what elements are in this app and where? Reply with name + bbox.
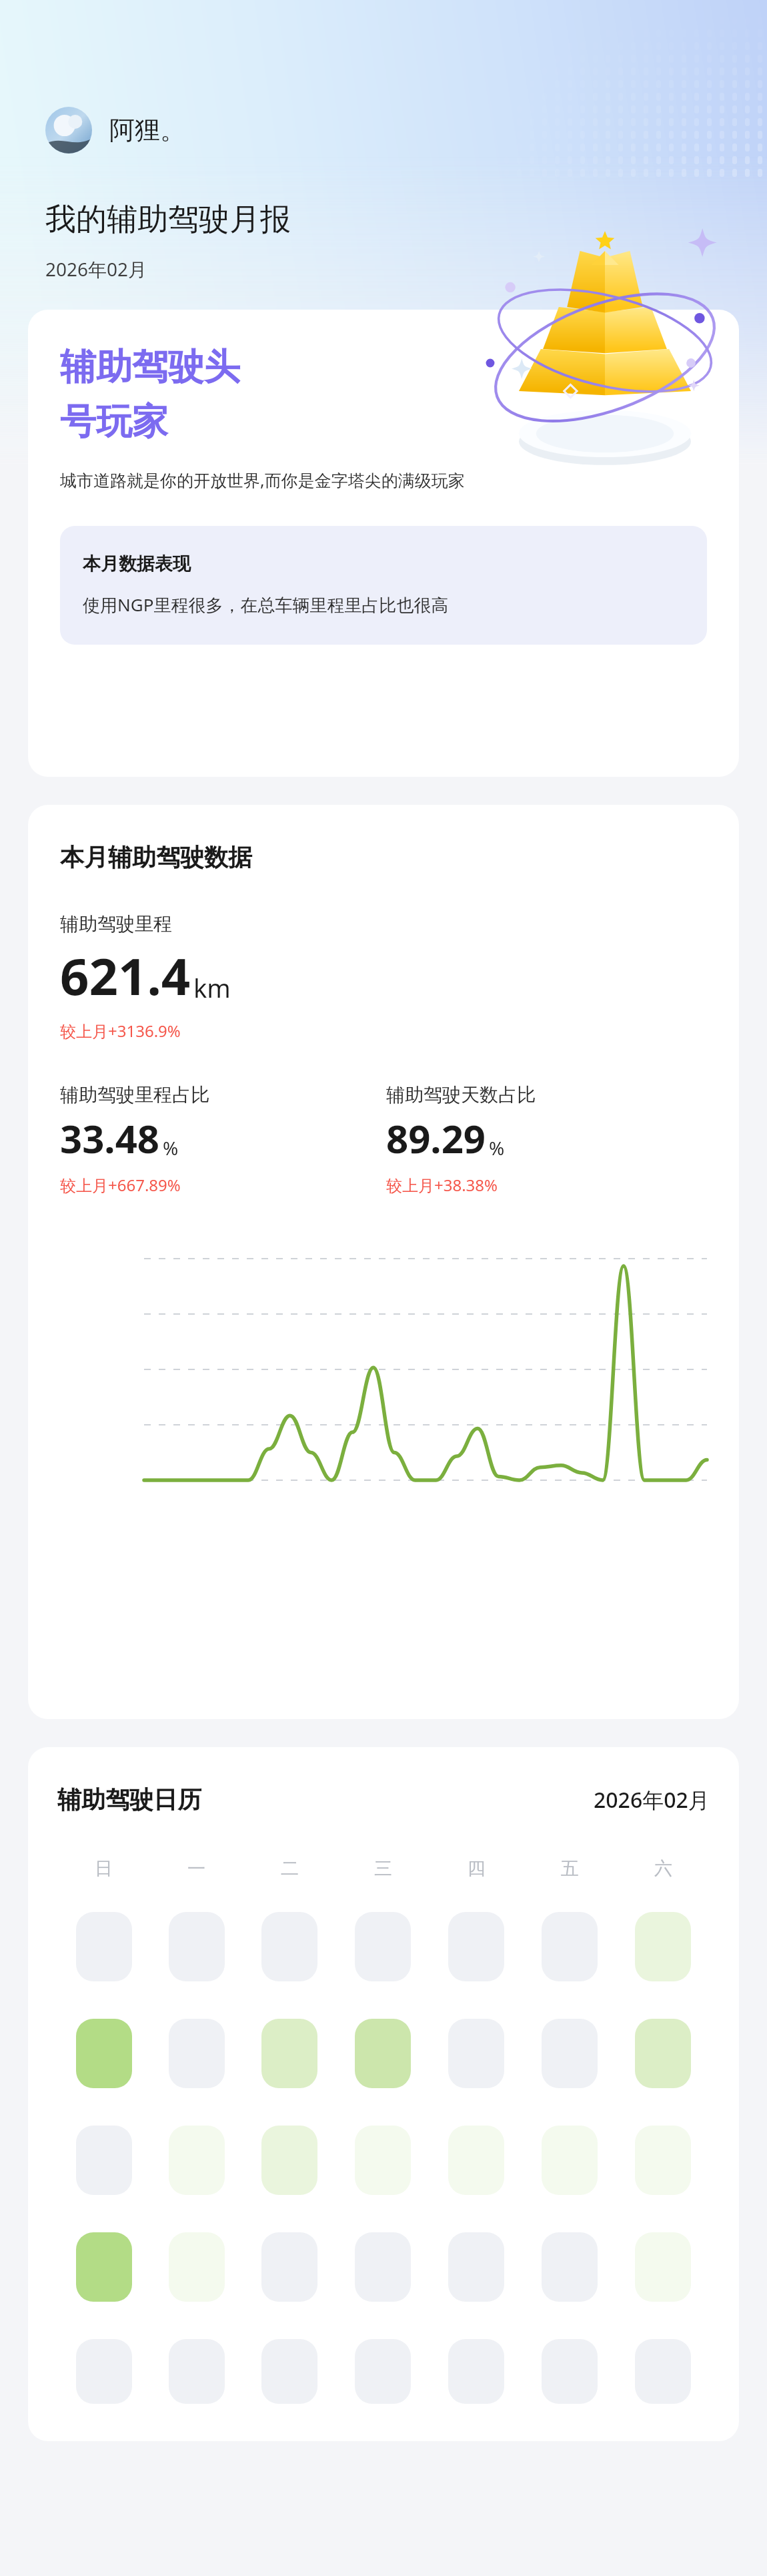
button[interactable] — [261, 1912, 317, 1981]
button[interactable] — [76, 2126, 132, 2195]
staticText: % — [163, 1135, 179, 1161]
staticText: 本月数据表现 — [83, 553, 191, 575]
button[interactable] — [169, 2019, 225, 2088]
button[interactable] — [261, 2339, 317, 2404]
staticText: 城市道路就是你的开放世界,而你是金字塔尖的满级玩家 — [60, 468, 465, 491]
staticText: 辅助驾驶天数占比 — [386, 1083, 536, 1106]
button[interactable] — [355, 1912, 411, 1981]
button[interactable] — [76, 2019, 132, 2088]
button[interactable] — [542, 2126, 598, 2195]
staticText: 阿狸。 — [109, 114, 185, 146]
staticText: 三 — [374, 1857, 392, 1880]
staticText: 我的辅助驾驶月报 — [45, 200, 291, 239]
button[interactable] — [76, 2339, 132, 2404]
staticText: 较上月+38.38% — [386, 1174, 498, 1196]
button[interactable] — [169, 2339, 225, 2404]
button[interactable]: 辅助驾驶天数占比 — [386, 1083, 712, 1196]
button[interactable] — [448, 2019, 504, 2088]
button[interactable]: 本月辅助驾驶数据 — [28, 805, 739, 1719]
staticText: 辅助驾驶里程 — [60, 912, 172, 936]
button[interactable] — [76, 2232, 132, 2302]
staticText: 日 — [95, 1857, 113, 1880]
staticText: 较上月+3136.9% — [60, 1020, 181, 1042]
staticText: 号玩家 — [60, 399, 168, 444]
button[interactable] — [635, 2339, 691, 2404]
staticText: 六 — [654, 1857, 672, 1880]
button[interactable] — [542, 2019, 598, 2088]
button[interactable] — [635, 2232, 691, 2302]
staticText: 89.29 — [386, 1112, 486, 1165]
button[interactable] — [635, 1912, 691, 1981]
staticText: 较上月+667.89% — [60, 1174, 181, 1196]
button[interactable] — [169, 2232, 225, 2302]
button[interactable] — [355, 2232, 411, 2302]
button[interactable]: 辅助驾驶里程占比 — [60, 1083, 386, 1196]
button[interactable] — [635, 2126, 691, 2195]
staticText: 辅助驾驶头 — [60, 344, 240, 390]
button[interactable] — [448, 2126, 504, 2195]
staticText: 2026年02月 — [594, 1785, 710, 1815]
button[interactable] — [261, 2232, 317, 2302]
button[interactable] — [448, 2232, 504, 2302]
button[interactable] — [448, 1912, 504, 1981]
staticText: 621.4 — [60, 941, 191, 1010]
staticText: 四 — [468, 1857, 486, 1880]
button[interactable]: 本月数据表现 — [60, 526, 707, 645]
staticText: 五 — [561, 1857, 579, 1880]
button[interactable]: 阿狸。 — [45, 107, 185, 153]
staticText: 二 — [281, 1857, 299, 1880]
staticText: 33.48 — [60, 1112, 160, 1165]
button[interactable] — [76, 1912, 132, 1981]
button[interactable] — [169, 2126, 225, 2195]
staticText: 本月辅助驾驶数据 — [60, 842, 252, 872]
staticText: 一 — [187, 1857, 205, 1880]
button[interactable] — [169, 1912, 225, 1981]
button[interactable] — [542, 2339, 598, 2404]
button[interactable] — [355, 2339, 411, 2404]
staticText: % — [489, 1135, 505, 1161]
button[interactable]: 辅助驾驶日历 — [28, 1747, 739, 2441]
staticText: 2026年02月 — [45, 256, 147, 282]
staticText: 辅助驾驶日历 — [57, 1785, 201, 1815]
button[interactable] — [542, 1912, 598, 1981]
staticText: km — [193, 970, 231, 1005]
button[interactable] — [355, 2126, 411, 2195]
button[interactable] — [448, 2339, 504, 2404]
button[interactable] — [542, 2232, 598, 2302]
button[interactable] — [261, 2126, 317, 2195]
button[interactable] — [635, 2019, 691, 2088]
staticText: 辅助驾驶里程占比 — [60, 1083, 209, 1106]
button[interactable] — [261, 2019, 317, 2088]
button[interactable] — [355, 2019, 411, 2088]
button[interactable] — [28, 310, 739, 777]
staticText: 使用NGP里程很多，在总车辆里程里占比也很高 — [83, 593, 449, 617]
